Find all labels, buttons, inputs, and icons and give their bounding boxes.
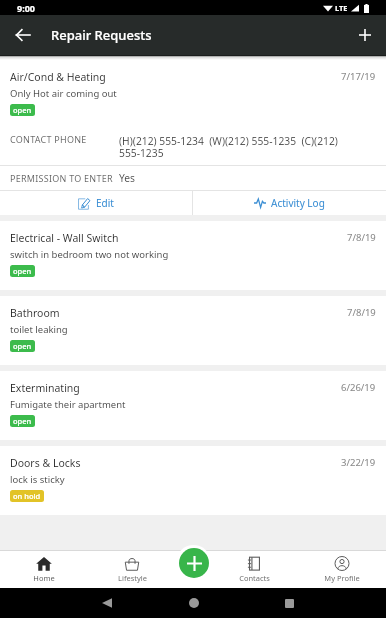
staticText: Air/Cond & Heating (10, 70, 341, 84)
button[interactable]: Bathroom (0, 296, 386, 365)
staticText: 9:00 (17, 2, 35, 14)
staticText: Only Hot air coming out (10, 87, 117, 100)
staticText: 3/22/19 (341, 456, 376, 469)
button[interactable]: Electrical - Wall Switch (0, 221, 386, 290)
button[interactable]: Add (352, 22, 378, 48)
staticText: 7/8/19 (347, 231, 376, 244)
staticText: 7/8/19 (347, 306, 376, 319)
button[interactable]: Doors & Locks (0, 446, 386, 515)
staticText: Exterminating (10, 381, 341, 395)
button[interactable]: Exterminating (0, 371, 386, 440)
staticText: on hold (13, 491, 41, 501)
staticText: Lifestyle (118, 573, 147, 583)
staticText: CONTACT PHONE (10, 133, 119, 145)
button[interactable]: Add request (176, 545, 211, 580)
staticText: Yes (119, 171, 136, 185)
button[interactable]: Back (10, 22, 36, 48)
staticText: Edit (96, 196, 114, 210)
staticText: Contacts (239, 573, 270, 583)
button[interactable]: Recents (278, 592, 300, 614)
staticText: open (13, 105, 32, 115)
staticText: open (13, 416, 32, 426)
button[interactable]: Contacts (210, 550, 298, 588)
button[interactable]: Home (183, 592, 205, 614)
staticText: My Profile (324, 573, 360, 583)
staticText: Repair Requests (51, 26, 152, 44)
staticText: Electrical - Wall Switch (10, 231, 347, 245)
staticText: Doors & Locks (10, 456, 341, 470)
staticText: 6/26/19 (341, 381, 376, 394)
staticText: open (13, 341, 32, 351)
staticText: open (13, 266, 32, 276)
button[interactable]: My Profile (298, 550, 386, 588)
staticText: toilet leaking (10, 323, 68, 336)
staticText: Fumigate their apartment (10, 398, 126, 411)
staticText: (H)(212) 555-1234 (W)(212) 555-1235 (C)(… (119, 134, 369, 160)
staticText: Home (33, 573, 55, 583)
staticText: lock is sticky (10, 473, 65, 486)
button[interactable]: Air/Cond & Heating (0, 55, 386, 120)
staticText: LTE (335, 3, 348, 13)
button[interactable]: Activity Log (193, 191, 386, 215)
staticText: Bathroom (10, 306, 347, 320)
staticText: Activity Log (271, 196, 325, 210)
button[interactable]: Home (0, 550, 88, 588)
staticText: switch in bedroom two not working (10, 248, 169, 261)
button[interactable]: Back (96, 592, 118, 614)
button[interactable]: Lifestyle (88, 550, 176, 588)
staticText: PERMISSION TO ENTER (10, 172, 119, 184)
button[interactable]: Edit (0, 191, 192, 215)
staticText: 7/17/19 (341, 70, 376, 83)
